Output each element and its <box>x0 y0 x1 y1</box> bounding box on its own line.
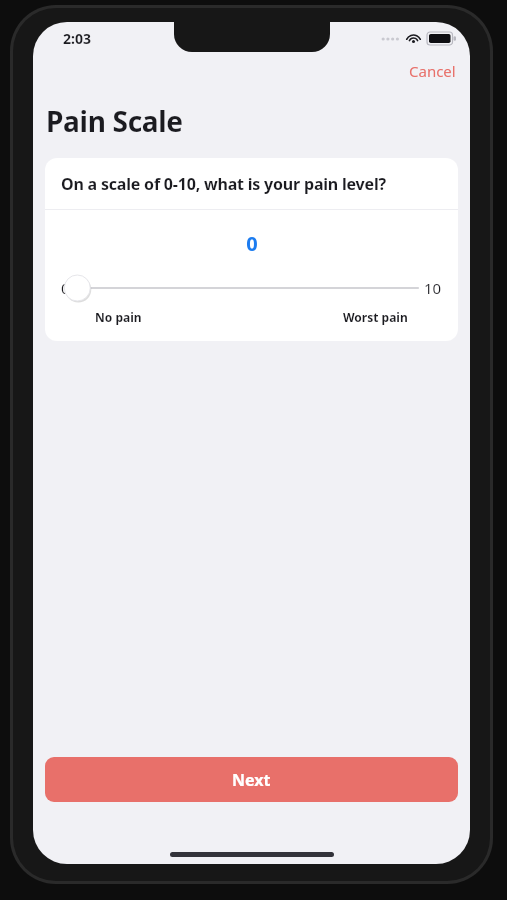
staticText: On a scale of 0-10, what is your pain le… <box>61 173 386 195</box>
staticText: No pain <box>95 309 142 325</box>
staticText: 0 <box>246 230 258 257</box>
button[interactable]: Cancel <box>403 57 462 85</box>
staticText: Cancel <box>409 61 456 81</box>
staticText: 2:03 <box>63 29 91 48</box>
staticText: 10 <box>424 278 442 298</box>
staticText: Worst pain <box>343 309 408 325</box>
staticText: 0 <box>61 278 70 298</box>
button[interactable]: Pain level slider <box>76 273 418 303</box>
button[interactable]: Next <box>45 757 458 802</box>
staticText: Pain Scale <box>46 102 183 140</box>
staticText: Next <box>232 769 271 791</box>
